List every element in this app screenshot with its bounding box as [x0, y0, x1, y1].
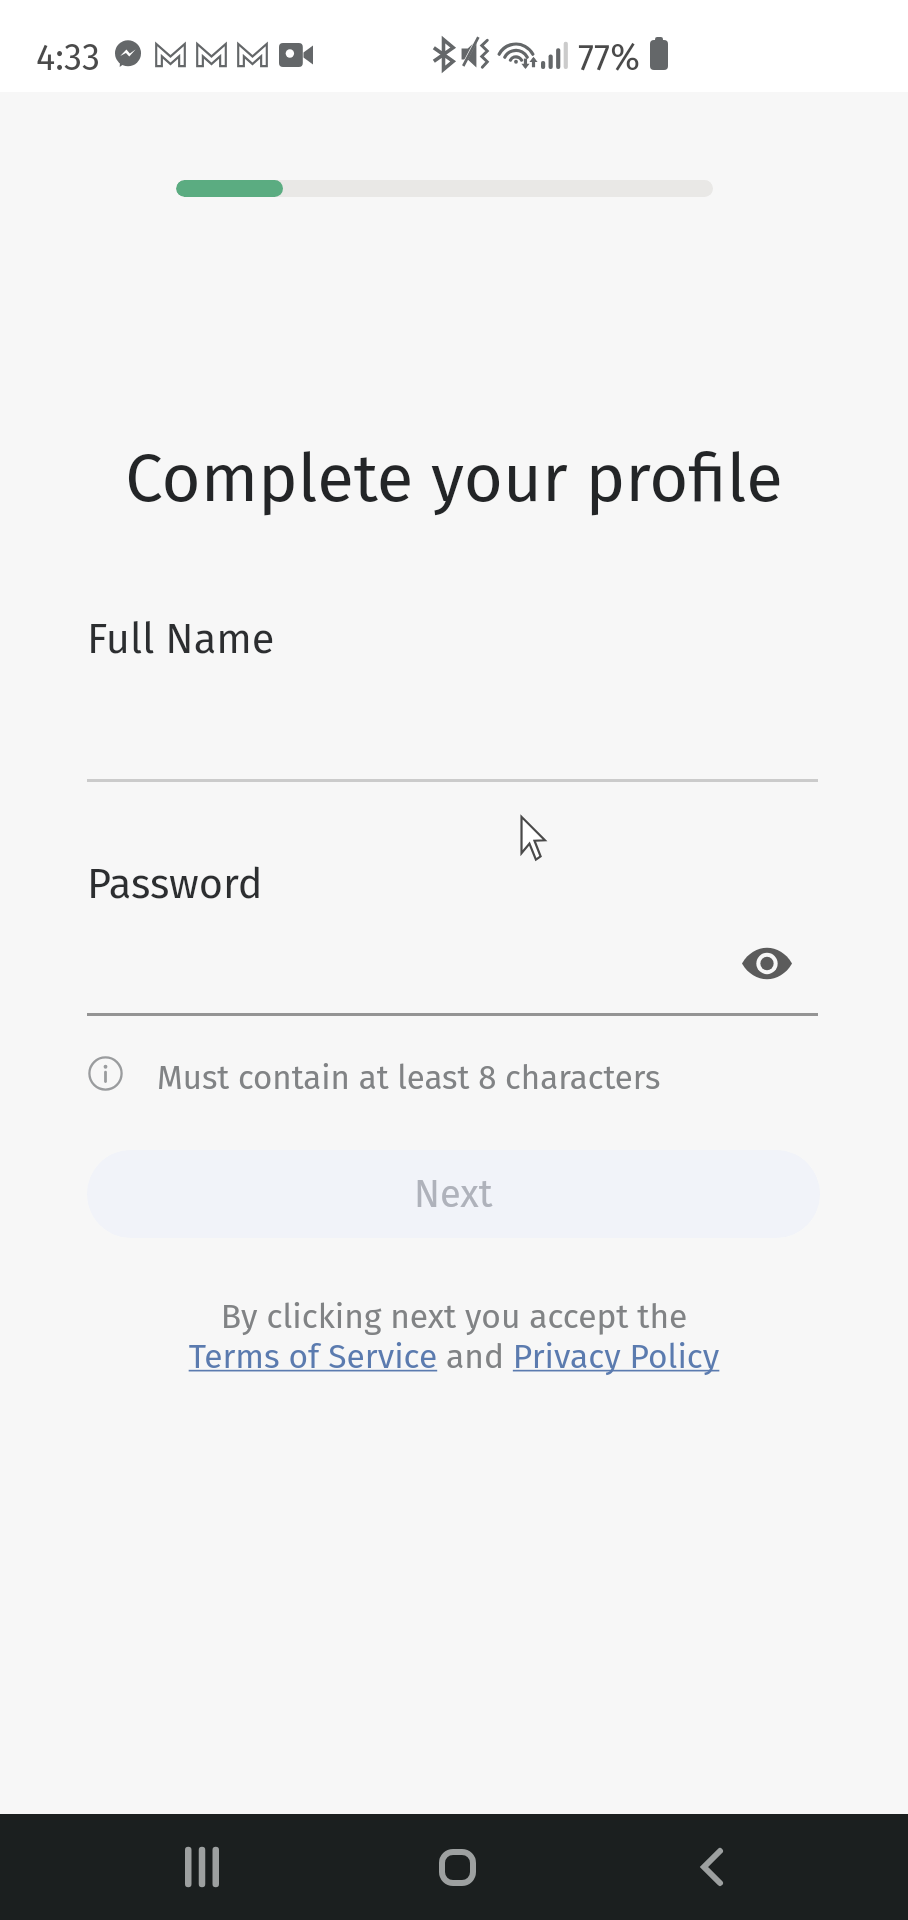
- staticText: Complete your profile: [0, 438, 908, 518]
- button[interactable]: Home: [407, 1814, 507, 1920]
- staticText: Password: [87, 859, 263, 909]
- staticText: Full Name: [87, 614, 275, 664]
- button[interactable]: Next: [87, 1150, 820, 1238]
- staticText: Next: [414, 1171, 493, 1217]
- staticText: 4:33: [36, 36, 101, 79]
- button[interactable]: Back: [662, 1814, 762, 1920]
- button[interactable]: Terms of Service and Privacy Policy: [0, 1337, 908, 1377]
- staticText: 77%: [578, 36, 641, 79]
- button[interactable]: Show password: [735, 931, 799, 995]
- button[interactable]: Recent apps: [152, 1814, 252, 1920]
- staticText: By clicking next you accept the: [0, 1297, 908, 1337]
- staticText: Must contain at least 8 characters: [157, 1058, 661, 1098]
